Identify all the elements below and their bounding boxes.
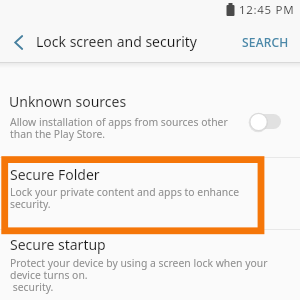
button[interactable]: Secure startup [0, 230, 300, 300]
button[interactable]: Secure Folder [0, 158, 300, 229]
staticText: SEARCH [242, 34, 289, 50]
button[interactable]: Unknown sources [0, 75, 300, 157]
button[interactable]: SEARCH [242, 30, 296, 54]
staticText: Unknown sources [9, 92, 127, 111]
staticText: 12:45 PM [239, 2, 295, 18]
staticText: Lock your private content and apps to en… [10, 185, 240, 211]
staticText: Lock screen and security [36, 32, 197, 51]
staticText: Protect your device by using a screen lo… [10, 256, 268, 294]
staticText: Secure startup [10, 235, 106, 254]
staticText: Secure Folder [10, 165, 100, 184]
button[interactable] [7, 30, 31, 54]
staticText: Allow installation of apps from sources … [10, 115, 228, 141]
